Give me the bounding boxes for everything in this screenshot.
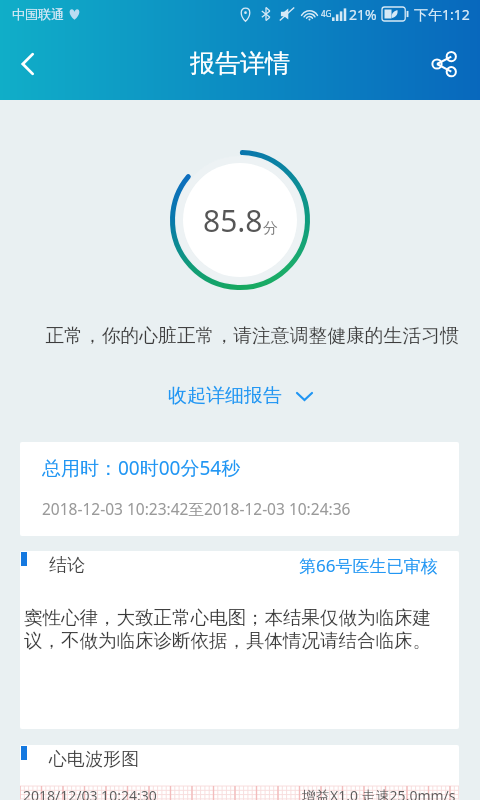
button[interactable]: 结论 bbox=[20, 551, 459, 729]
staticText: 心电波形图 bbox=[49, 748, 139, 771]
staticText: 分 bbox=[263, 219, 278, 238]
staticText: 2018-12-03 10:23:42至2018-12-03 10:24:36 bbox=[42, 498, 351, 519]
staticText: 总用时：00时00分54秒 bbox=[42, 455, 241, 481]
staticText: 第66号医生已审核 bbox=[299, 554, 438, 577]
staticText: 正常，你的心脏正常，请注意调整健康的生活习惯 bbox=[12, 324, 480, 348]
button[interactable]: 收起详细报告 bbox=[158, 381, 323, 411]
button[interactable]: Back bbox=[0, 28, 56, 100]
button[interactable]: 总用时：00时00分54秒 bbox=[20, 442, 459, 536]
staticText: 85.8 bbox=[203, 200, 263, 241]
staticText: 窦性心律，大致正常心电图；本结果仅做为临床建议，不做为临床诊断依据，具体情况请结… bbox=[24, 606, 449, 653]
staticText: 报告详情 bbox=[190, 48, 290, 79]
staticText: 结论 bbox=[49, 554, 85, 577]
staticText: 下午1:12 bbox=[414, 5, 470, 24]
staticText: 4G bbox=[321, 8, 332, 19]
button[interactable]: 心电波形图 bbox=[20, 745, 459, 800]
staticText: 2018/12/03 10:24:30 bbox=[23, 786, 157, 800]
staticText: 增益X1.0 走速25.0mm/s bbox=[302, 786, 456, 800]
button[interactable]: Share bbox=[416, 28, 472, 100]
staticText: 21% bbox=[349, 5, 377, 24]
staticText: 收起详细报告 bbox=[168, 384, 282, 408]
staticText: 中国联通 bbox=[12, 6, 64, 22]
